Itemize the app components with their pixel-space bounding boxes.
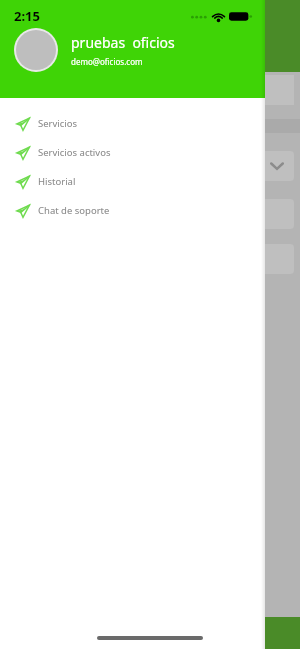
- staticText: 2:15: [14, 7, 40, 25]
- staticText: demo@oficios.com: [71, 56, 143, 67]
- button[interactable]: Historial: [0, 167, 265, 196]
- staticText: Servicios activos: [38, 146, 111, 159]
- staticText: Historial: [38, 175, 76, 188]
- staticText: pruebas oficios: [71, 33, 175, 52]
- button[interactable]: Servicios activos: [0, 138, 265, 167]
- staticText: Chat de soporte: [38, 204, 110, 217]
- button[interactable]: Servicios: [0, 109, 265, 138]
- button[interactable]: Chat de soporte: [0, 196, 265, 225]
- staticText: Servicios: [38, 117, 78, 130]
